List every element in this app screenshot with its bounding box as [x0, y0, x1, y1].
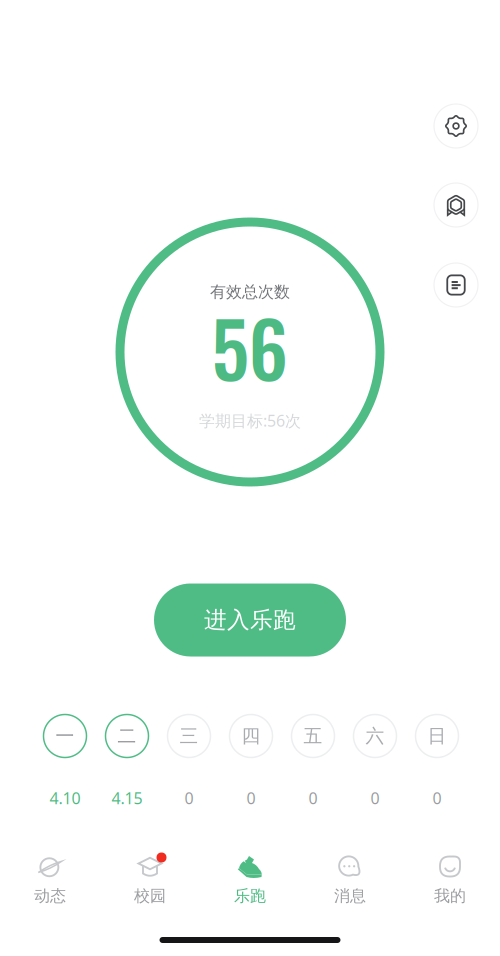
staticText: 4.15: [111, 787, 142, 809]
staticText: 乐跑: [234, 886, 266, 906]
button[interactable]: 一: [34, 712, 96, 808]
staticText: 一: [55, 724, 74, 747]
button[interactable]: 动态: [0, 854, 100, 903]
staticText: 三: [179, 724, 198, 747]
staticText: 0: [246, 787, 255, 809]
button[interactable]: 二: [96, 712, 158, 808]
button[interactable]: 日: [406, 712, 468, 808]
staticText: 五: [303, 724, 322, 747]
button[interactable]: 六: [344, 712, 406, 808]
staticText: 二: [117, 724, 136, 747]
staticText: 我的: [434, 886, 466, 906]
button[interactable]: 校园: [100, 854, 200, 903]
button[interactable]: Settings: [434, 104, 478, 148]
staticText: 消息: [334, 886, 366, 906]
staticText: 4.10: [49, 787, 80, 809]
button[interactable]: 我的: [400, 854, 500, 903]
button[interactable]: Records: [434, 263, 478, 307]
staticText: 56: [211, 291, 288, 403]
staticText: 学期目标:56次: [199, 410, 301, 431]
button[interactable]: 进入乐跑: [154, 583, 346, 656]
staticText: 有效总次数: [210, 282, 290, 302]
staticText: 日: [427, 724, 446, 747]
button[interactable]: 乐跑: [200, 854, 300, 903]
staticText: 进入乐跑: [204, 606, 296, 634]
staticText: 0: [432, 787, 441, 809]
staticText: 四: [241, 724, 260, 747]
staticText: 0: [184, 787, 193, 809]
button[interactable]: 四: [220, 712, 282, 808]
staticText: 动态: [34, 886, 66, 906]
button[interactable]: 消息: [300, 854, 400, 903]
button[interactable]: 五: [282, 712, 344, 808]
button[interactable]: Achievements: [434, 183, 478, 227]
staticText: 六: [365, 724, 384, 747]
staticText: 校园: [134, 886, 166, 906]
button[interactable]: 三: [158, 712, 220, 808]
staticText: 0: [370, 787, 379, 809]
staticText: 0: [308, 787, 317, 809]
